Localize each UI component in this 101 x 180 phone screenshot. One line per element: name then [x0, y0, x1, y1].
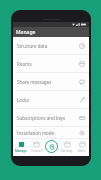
- button[interactable]: Installation mode: [13, 127, 89, 138]
- button[interactable]: Rooms: [13, 55, 89, 72]
- button[interactable]: Add device: [44, 138, 59, 156]
- staticText: Security: [61, 149, 73, 153]
- button[interactable]: Subscriptions and keys: [13, 109, 89, 126]
- button[interactable]: Share messages: [13, 73, 89, 90]
- button[interactable]: Structure data: [13, 37, 89, 54]
- staticText: Locks: [17, 97, 78, 103]
- button[interactable]: Manage: [13, 138, 29, 156]
- staticText: More: [78, 149, 86, 153]
- staticText: Manage: [15, 149, 27, 153]
- staticText: Rooms: [17, 61, 78, 67]
- staticText: Subscriptions and keys: [17, 115, 78, 121]
- button[interactable]: Locks: [13, 91, 89, 108]
- staticText: Installation mode: [17, 130, 78, 136]
- staticText: Manage: [16, 29, 36, 36]
- staticText: Structure data: [17, 43, 78, 49]
- staticText: Control: [31, 149, 42, 153]
- button[interactable]: More: [74, 138, 89, 156]
- button[interactable]: Control: [29, 138, 44, 156]
- button[interactable]: Security: [59, 138, 74, 156]
- staticText: Share messages: [17, 79, 78, 85]
